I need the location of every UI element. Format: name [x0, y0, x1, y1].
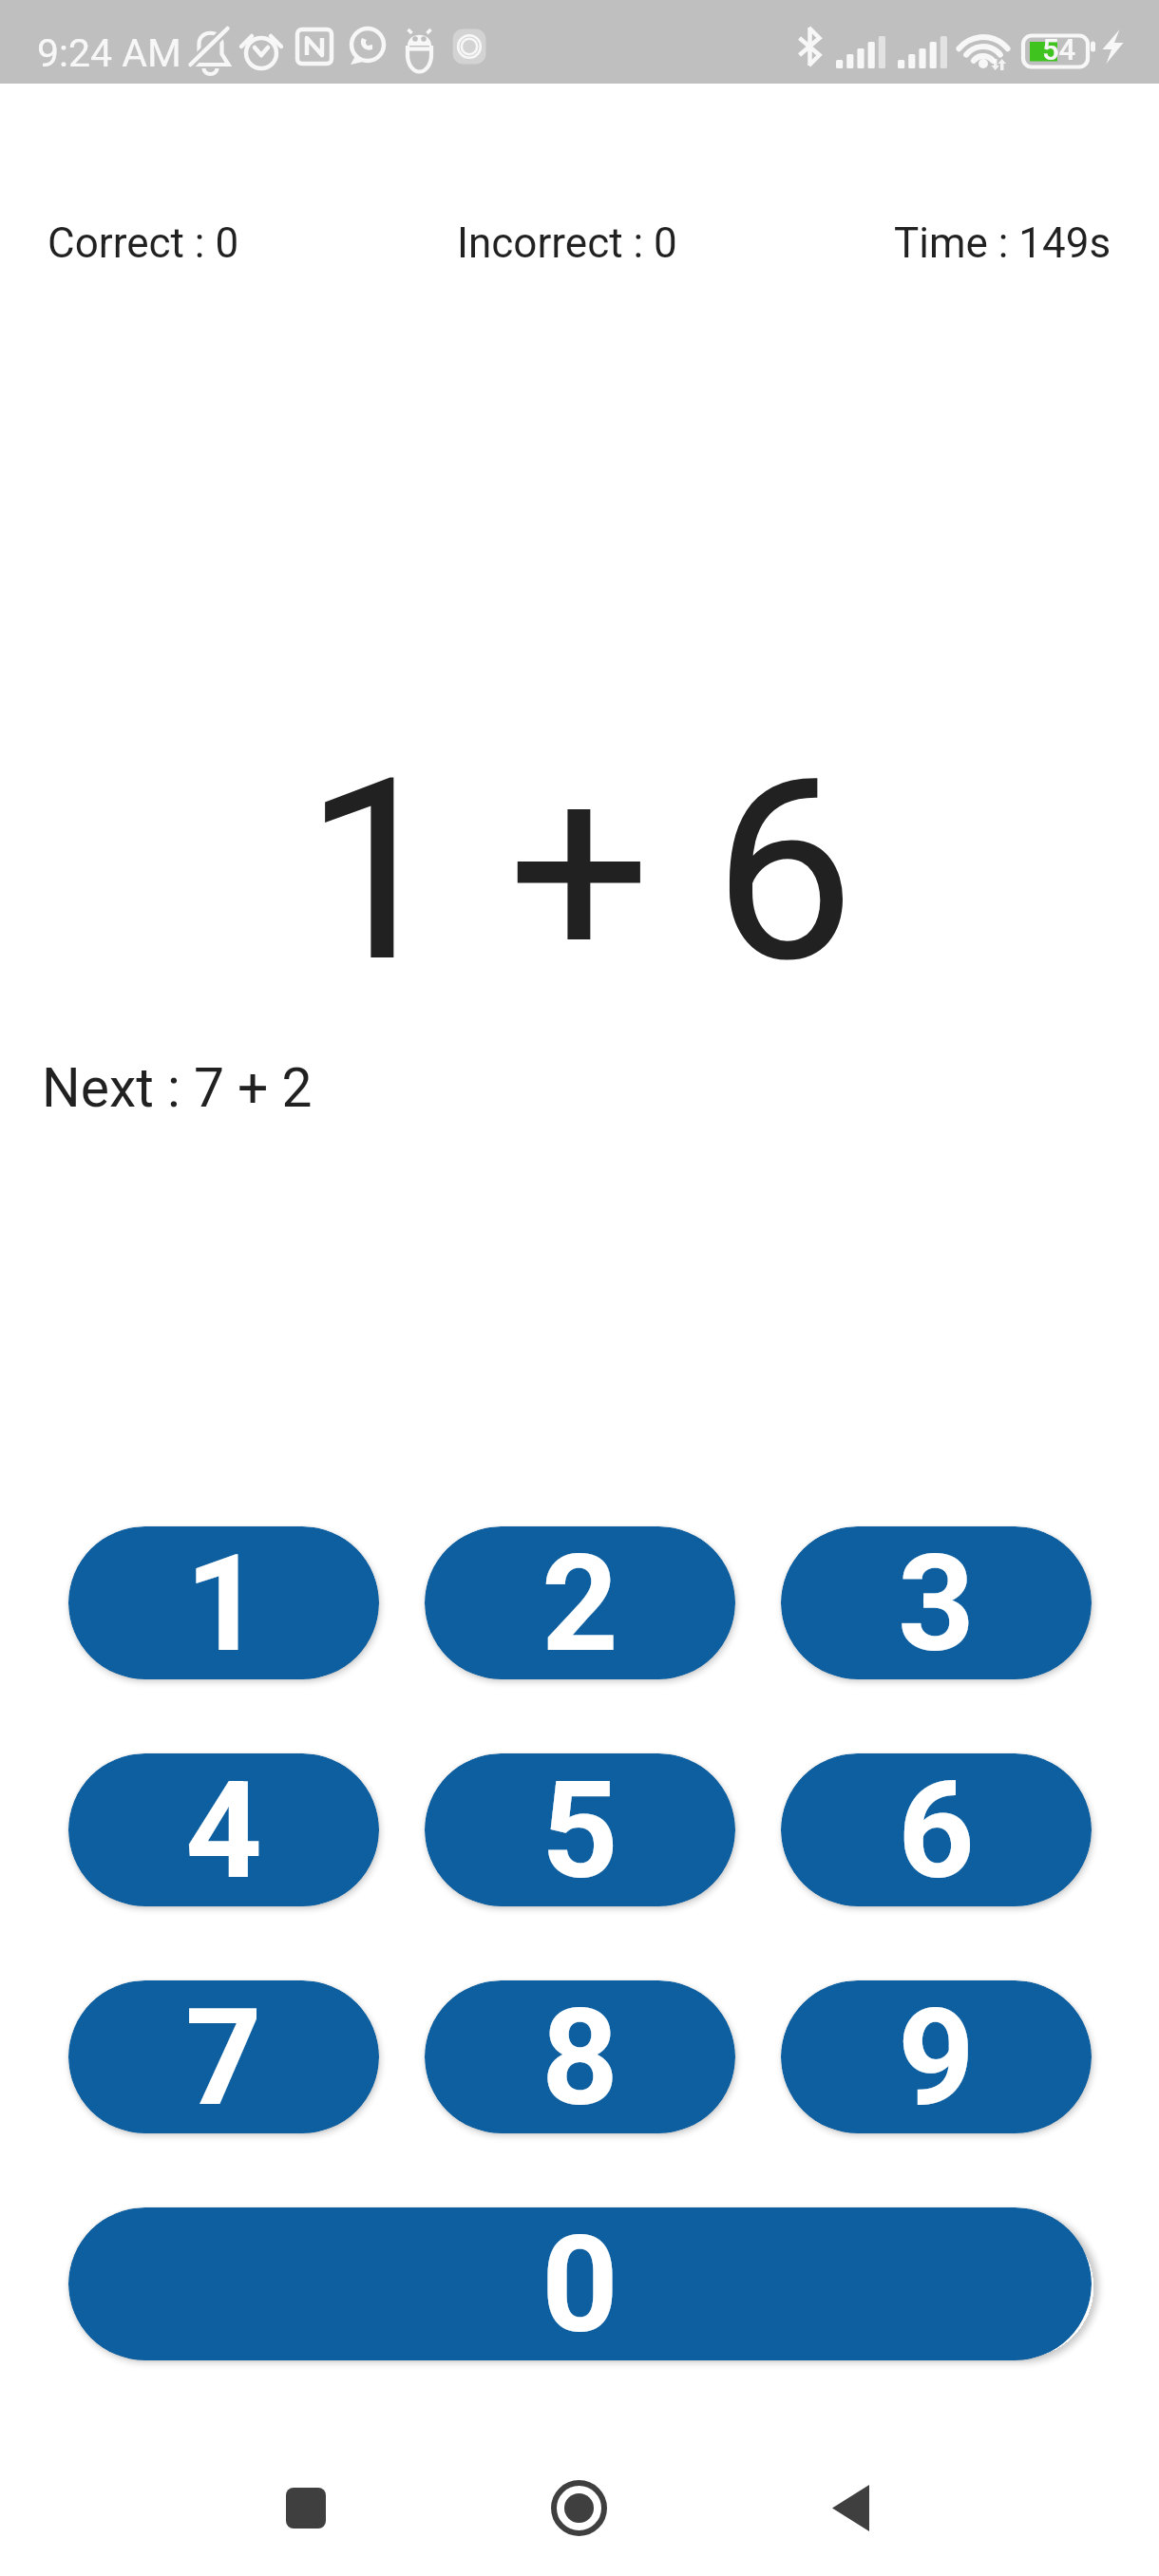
staticText: 8: [541, 1980, 618, 2132]
staticText: 7: [185, 1980, 262, 2132]
staticText: 5: [541, 1753, 618, 1905]
button[interactable]: 4: [68, 1753, 379, 1906]
button[interactable]: 5: [425, 1753, 735, 1906]
staticText: Time : 149s: [894, 218, 1111, 268]
staticText: 4: [185, 1753, 262, 1905]
staticText: Incorrect : 0: [457, 218, 677, 268]
staticText: 1 + 6: [304, 724, 855, 1019]
staticText: 0: [541, 2207, 618, 2359]
button[interactable]: Recent apps: [262, 2464, 350, 2551]
staticText: 6: [898, 1753, 975, 1905]
staticText: 3: [898, 1526, 975, 1678]
staticText: 9: [898, 1980, 975, 2132]
button[interactable]: Home: [535, 2464, 622, 2551]
staticText: 54: [1042, 32, 1076, 66]
button[interactable]: 9: [781, 1980, 1092, 2133]
button[interactable]: 3: [781, 1526, 1092, 1679]
button[interactable]: 0: [68, 2207, 1092, 2360]
staticText: Next : 7 + 2: [42, 1056, 313, 1120]
staticText: 9:24 AM: [37, 30, 181, 76]
staticText: Correct : 0: [47, 218, 239, 268]
button[interactable]: 7: [68, 1980, 379, 2133]
button[interactable]: 6: [781, 1753, 1092, 1906]
button[interactable]: 2: [425, 1526, 735, 1679]
button[interactable]: 8: [425, 1980, 735, 2133]
staticText: 2: [541, 1526, 618, 1678]
button[interactable]: Back: [807, 2464, 895, 2551]
button[interactable]: 1: [68, 1526, 379, 1679]
staticText: 1: [185, 1526, 262, 1678]
